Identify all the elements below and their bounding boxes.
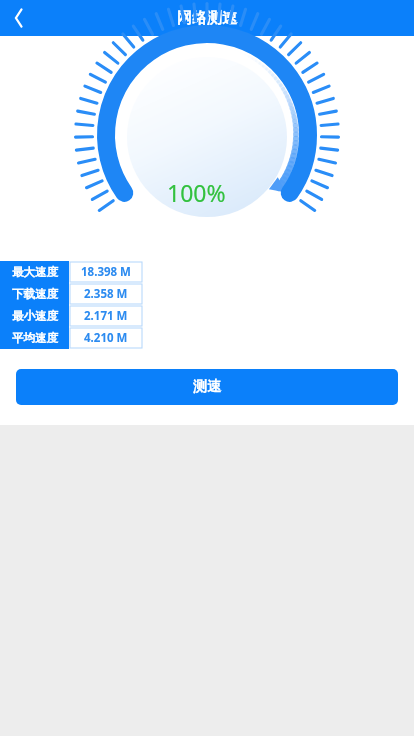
button[interactable]: 测速 xyxy=(16,369,398,405)
staticText: 平均速度 xyxy=(12,331,58,345)
staticText: 网络测速 xyxy=(177,9,237,28)
staticText: 4.210 M xyxy=(84,330,128,346)
staticText: 2.358 M xyxy=(84,286,128,302)
button[interactable]: Back xyxy=(0,0,36,36)
staticText: 最大速度 xyxy=(12,265,58,279)
staticText: 2.171 M xyxy=(84,308,128,324)
staticText: 18.398 M xyxy=(81,264,131,280)
staticText: 下载速度 xyxy=(12,287,58,301)
staticText: 100% xyxy=(167,177,226,208)
staticText: 测速 xyxy=(193,378,221,396)
staticText: 最小速度 xyxy=(12,309,58,323)
